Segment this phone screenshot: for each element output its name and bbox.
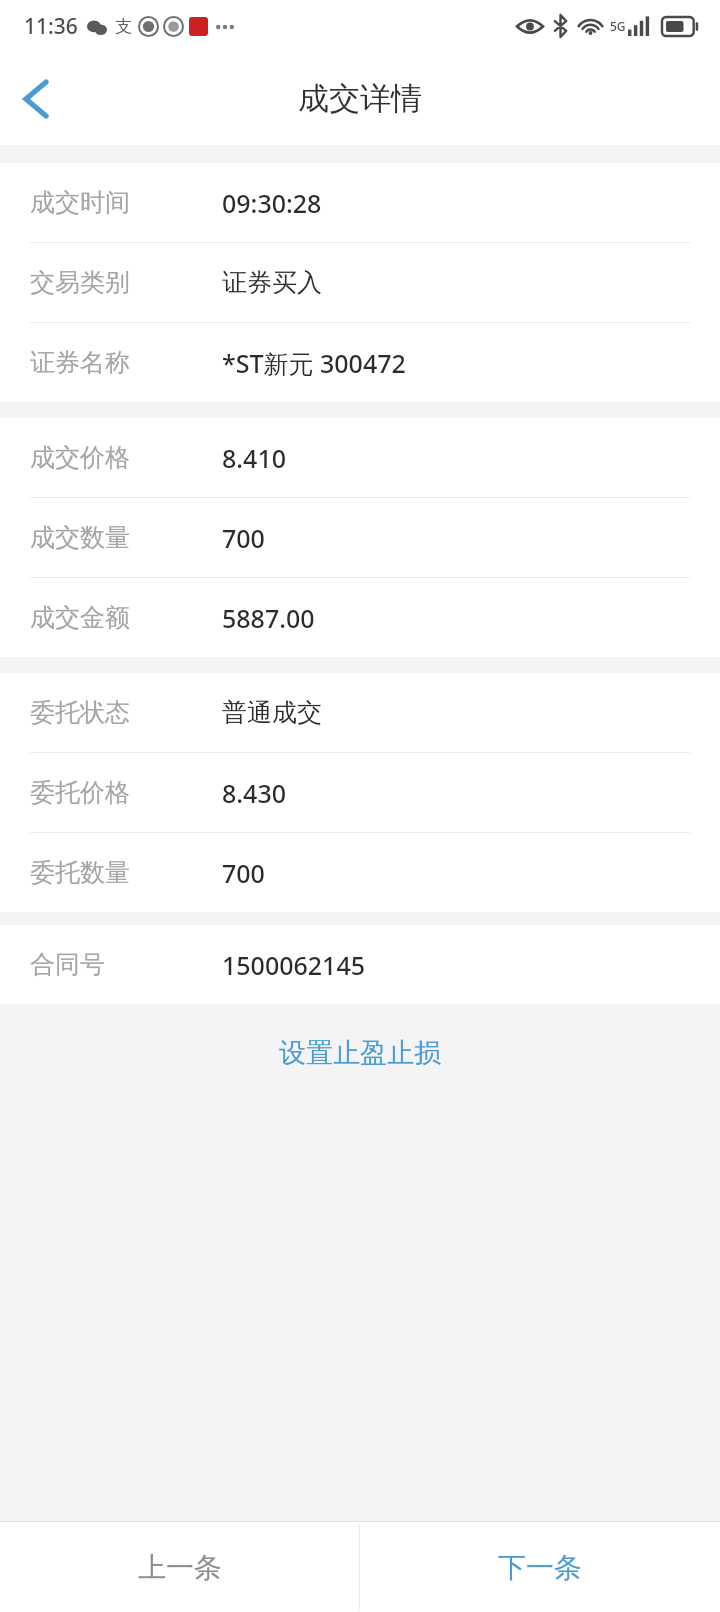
button[interactable]: 成交数量 <box>0 498 720 577</box>
staticText: 成交价格 <box>30 442 222 473</box>
staticText: *ST新元 300472 <box>222 346 406 380</box>
staticText: 合同号 <box>30 949 222 980</box>
staticText: 下一条 <box>498 1550 582 1585</box>
staticText: 11:36 <box>24 12 78 41</box>
staticText: 成交详情 <box>298 79 422 118</box>
button[interactable]: 委托数量 <box>0 833 720 912</box>
staticText: 1500062145 <box>222 948 366 982</box>
staticText: 交易类别 <box>30 267 222 298</box>
staticText: 5887.00 <box>222 601 315 635</box>
staticText: 8.410 <box>222 441 287 475</box>
staticText: 委托数量 <box>30 857 222 888</box>
staticText: 8.430 <box>222 776 287 810</box>
staticText: 支 <box>115 16 132 37</box>
button[interactable]: 合同号 <box>0 925 720 1004</box>
staticText: 普通成交 <box>222 697 322 728</box>
button[interactable]: 下一条 <box>360 1522 720 1612</box>
button[interactable]: Back <box>0 63 72 135</box>
staticText: 委托价格 <box>30 777 222 808</box>
staticText: 设置止盈止损 <box>279 1036 441 1070</box>
button[interactable]: 成交价格 <box>0 418 720 497</box>
button[interactable]: 上一条 <box>0 1522 359 1612</box>
staticText: 成交时间 <box>30 187 222 218</box>
staticText: 成交数量 <box>30 522 222 553</box>
button[interactable]: 成交金额 <box>0 578 720 657</box>
button[interactable]: 委托价格 <box>0 753 720 832</box>
staticText: 委托状态 <box>30 697 222 728</box>
staticText: 证券买入 <box>222 267 322 298</box>
button[interactable]: 委托状态 <box>0 673 720 752</box>
staticText: 700 <box>222 521 265 555</box>
staticText: 成交金额 <box>30 602 222 633</box>
staticText: 09:30:28 <box>222 186 322 220</box>
button[interactable]: 证券名称 <box>0 323 720 402</box>
staticText: 700 <box>222 856 265 890</box>
button[interactable]: 成交时间 <box>0 163 720 242</box>
staticText: 证券名称 <box>30 347 222 378</box>
button[interactable]: 设置止盈止损 <box>253 1026 467 1080</box>
staticText: 上一条 <box>138 1550 222 1585</box>
button[interactable]: 交易类别 <box>0 243 720 322</box>
staticText: 5G <box>610 18 626 34</box>
